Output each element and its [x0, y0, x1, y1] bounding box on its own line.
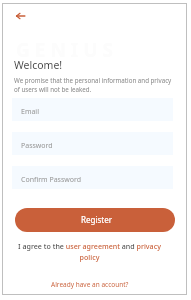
- staticText: Already have an account?: [51, 280, 129, 289]
- button[interactable]: I agree to the user agreement and privac…: [15, 241, 164, 262]
- button[interactable]: Register: [15, 208, 175, 232]
- button[interactable]: Back: [10, 5, 31, 26]
- staticText: I agree to the user agreement and privac…: [15, 241, 164, 262]
- button[interactable]: Already have an account?: [3, 280, 177, 289]
- staticText: Confirm Password: [21, 175, 82, 185]
- staticText: Password: [21, 141, 53, 151]
- button[interactable]: Confirm Password: [12, 166, 173, 189]
- staticText: Welcome!: [14, 58, 63, 72]
- staticText: Email: [21, 107, 39, 117]
- staticText: We promise that the personal information…: [14, 76, 172, 94]
- staticText: Register: [81, 214, 113, 225]
- button[interactable]: Email: [12, 98, 173, 121]
- button[interactable]: Password: [12, 132, 173, 155]
- staticText: GENIUS: [16, 37, 119, 63]
